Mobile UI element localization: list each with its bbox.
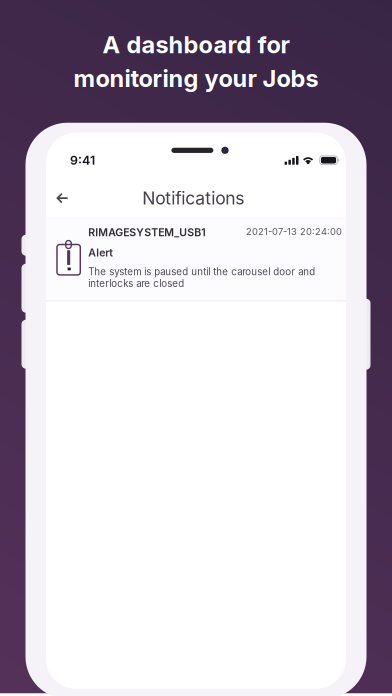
button[interactable]: RIMAGESYSTEM_USB1 [46,218,346,300]
staticText: The system is paused until the carousel … [88,266,315,289]
staticText: monitoring your Jobs [73,64,318,93]
staticText: Alert [88,246,113,259]
staticText: Notifications [142,188,244,209]
staticText: 2021-07-13 20:24:00 [246,226,342,237]
staticText: 9:41 [70,153,95,168]
staticText: RIMAGESYSTEM_USB1 [88,226,205,239]
button[interactable]: Back [49,186,75,211]
staticText: A dashboard for [102,30,289,59]
